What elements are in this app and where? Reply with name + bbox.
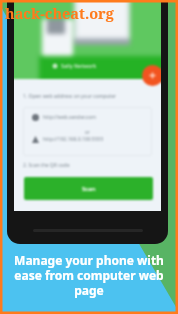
staticText: or [85,129,90,135]
staticText: Manage your phone with ease from compute… [12,252,166,298]
staticText: hack-cheat.org [5,3,114,23]
staticText: http://192.168.0.100:5555 [43,136,104,143]
staticText: http://web.sender.com [43,114,96,121]
button[interactable]: Scan [24,177,153,200]
staticText: Scan [82,185,96,193]
staticText: Sally Network [61,62,97,69]
button[interactable]: Add device [142,65,161,86]
staticText: 1. Open web address on your computer [23,93,117,100]
staticText: 2. Scan the QR code [23,162,70,169]
